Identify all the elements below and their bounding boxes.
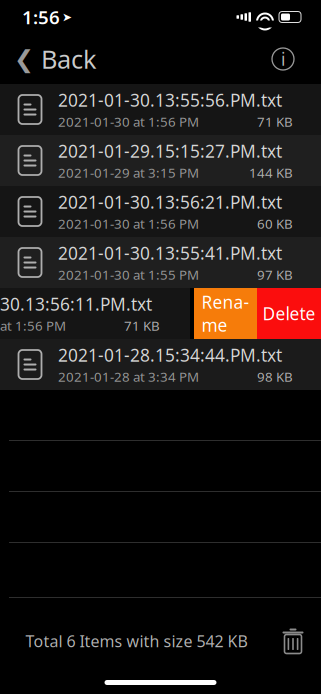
staticText: i [281,47,285,70]
staticText: ➤ [62,10,72,24]
button[interactable]: 2021-01-30.13:55:56.PM.txt [0,84,321,135]
button[interactable]: Rename [194,288,257,339]
staticText: 71 KB [124,317,160,334]
staticText: 2021-01-30.13:56:21.PM.txt [58,191,282,214]
staticText: at 1:56 PM [0,317,66,334]
staticText: 2021-01-29.15:15:27.PM.txt [58,140,282,163]
staticText: ❮ [14,45,34,73]
staticText: 30.13:56:11.PM.txt [0,293,152,316]
staticText: 2021-01-30 at 1:56 PM [58,215,199,232]
staticText: Total 6 Items with size 542 KB [25,630,247,652]
staticText: Back [41,42,97,76]
staticText: 2021-01-30.13:55:41.PM.txt [58,242,282,265]
staticText: 2021-01-30 at 1:56 PM [58,113,199,130]
staticText: 71 KB [257,113,293,130]
button[interactable]: Delete all [273,619,313,663]
staticText: 2021-01-29 at 3:15 PM [58,164,199,181]
button[interactable]: 2021-01-30.13:56:21.PM.txt [0,186,321,237]
button[interactable]: 2021-01-30.13:55:41.PM.txt [0,237,321,288]
button[interactable]: Delete [257,288,321,339]
button[interactable]: ❮ [0,37,111,81]
staticText: 60 KB [257,215,293,232]
staticText: Delete [262,302,315,325]
staticText: 2021-01-30 at 1:55 PM [58,266,199,283]
button[interactable]: 2021-01-29.15:15:27.PM.txt [0,135,321,186]
staticText: 1:56 [22,5,60,29]
button[interactable]: Info [261,37,305,81]
staticText: Rename [201,290,249,336]
button[interactable]: 2021-01-28.15:34:44.PM.txt [0,339,321,390]
staticText: 2021-01-28 at 3:34 PM [58,368,199,385]
staticText: 2021-01-30.13:55:56.PM.txt [58,89,282,112]
staticText: 2021-01-28.15:34:44.PM.txt [58,344,282,367]
staticText: 144 KB [249,164,293,181]
staticText: 97 KB [257,266,293,283]
staticText: 98 KB [257,368,293,385]
